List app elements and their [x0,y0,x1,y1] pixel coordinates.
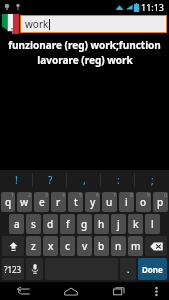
button[interactable]: ! [0,170,33,190]
staticText: 1 [11,192,14,199]
button[interactable]: x [43,236,58,256]
staticText: 5 [79,192,82,199]
staticText: 9 [147,192,150,199]
button[interactable]: ; [135,170,169,190]
button[interactable]: ? [33,170,67,190]
button[interactable]: w [17,192,32,212]
staticText: y [90,195,96,209]
staticText: lavorare (reg) work [37,53,133,67]
button[interactable]: . [120,258,136,280]
button[interactable]: m [128,236,143,256]
button[interactable]: Menu [143,282,169,300]
button[interactable]: q [1,192,15,212]
staticText: 2 [28,192,31,199]
staticText: f [66,217,70,231]
staticText: c [65,239,70,253]
staticText: d [47,217,54,231]
button[interactable]: f [60,214,75,234]
staticText: u [106,195,113,209]
button[interactable]: Done [138,258,167,280]
button[interactable]: : [101,170,135,190]
button[interactable]: h [94,214,109,234]
staticText: : [117,173,120,187]
staticText: w [20,195,29,209]
button[interactable]: z [26,236,41,256]
button[interactable]: ?123 [2,258,24,280]
button[interactable]: b [94,236,109,256]
staticText: 7 [113,192,116,199]
staticText: o [140,195,147,209]
staticText: n [115,239,122,253]
button[interactable]: p [153,192,168,212]
button[interactable]: y [85,192,100,212]
staticText: t [74,195,78,209]
staticText: e [39,195,45,209]
staticText: z [31,239,36,253]
staticText: ! [15,173,18,187]
button[interactable]: Recent apps [95,282,143,300]
button[interactable]: Shift [2,236,24,256]
button[interactable]: Backspace [145,236,167,256]
staticText: b [98,239,105,253]
staticText: ? [48,173,53,187]
staticText: Done [142,264,163,275]
button[interactable]: e [34,192,49,212]
button[interactable]: n [111,236,126,256]
button[interactable]: d [43,214,58,234]
button[interactable]: Voice input [26,258,43,280]
button[interactable]: Back [0,282,47,300]
button[interactable]: s [26,214,41,234]
staticText: s [31,217,36,231]
button[interactable]: Italian language [2,14,19,34]
staticText: 11:13 [141,1,165,13]
staticText: , [83,173,86,187]
button[interactable]: u [102,192,117,212]
button[interactable]: i [119,192,134,212]
staticText: 0 [164,192,167,199]
staticText: p [157,195,164,209]
staticText: m [131,239,141,253]
staticText: 3 [45,192,48,199]
staticText: ; [151,173,154,187]
button[interactable]: work [21,16,166,32]
button[interactable]: a [9,214,24,234]
staticText: k [133,217,139,231]
button[interactable]: k [128,214,143,234]
button[interactable]: c [60,236,75,256]
button[interactable]: , [67,170,101,190]
button[interactable]: t [68,192,83,212]
staticText: 6 [96,192,99,199]
button[interactable]: Home [47,282,95,300]
button[interactable]: o [136,192,151,212]
button[interactable]: r [51,192,66,212]
staticText: . [127,263,130,275]
staticText: ?123 [4,264,22,275]
staticText: r [56,195,61,209]
button[interactable]: v [77,236,92,256]
staticText: 4 [62,192,65,199]
staticText: h [98,217,105,231]
button[interactable]: g [77,214,92,234]
staticText: i [125,195,128,209]
staticText: a [14,217,20,231]
staticText: work [25,17,49,31]
staticText: funzionare (reg) work;function [8,38,161,52]
staticText: l [151,217,154,231]
staticText: j [117,217,120,231]
staticText: v [82,239,88,253]
button[interactable]: j [111,214,126,234]
staticText: ITA [11,27,19,34]
staticText: x [48,239,54,253]
staticText: g [81,217,88,231]
button[interactable]: l [145,214,160,234]
staticText: 8 [130,192,133,199]
staticText: q [5,195,12,209]
